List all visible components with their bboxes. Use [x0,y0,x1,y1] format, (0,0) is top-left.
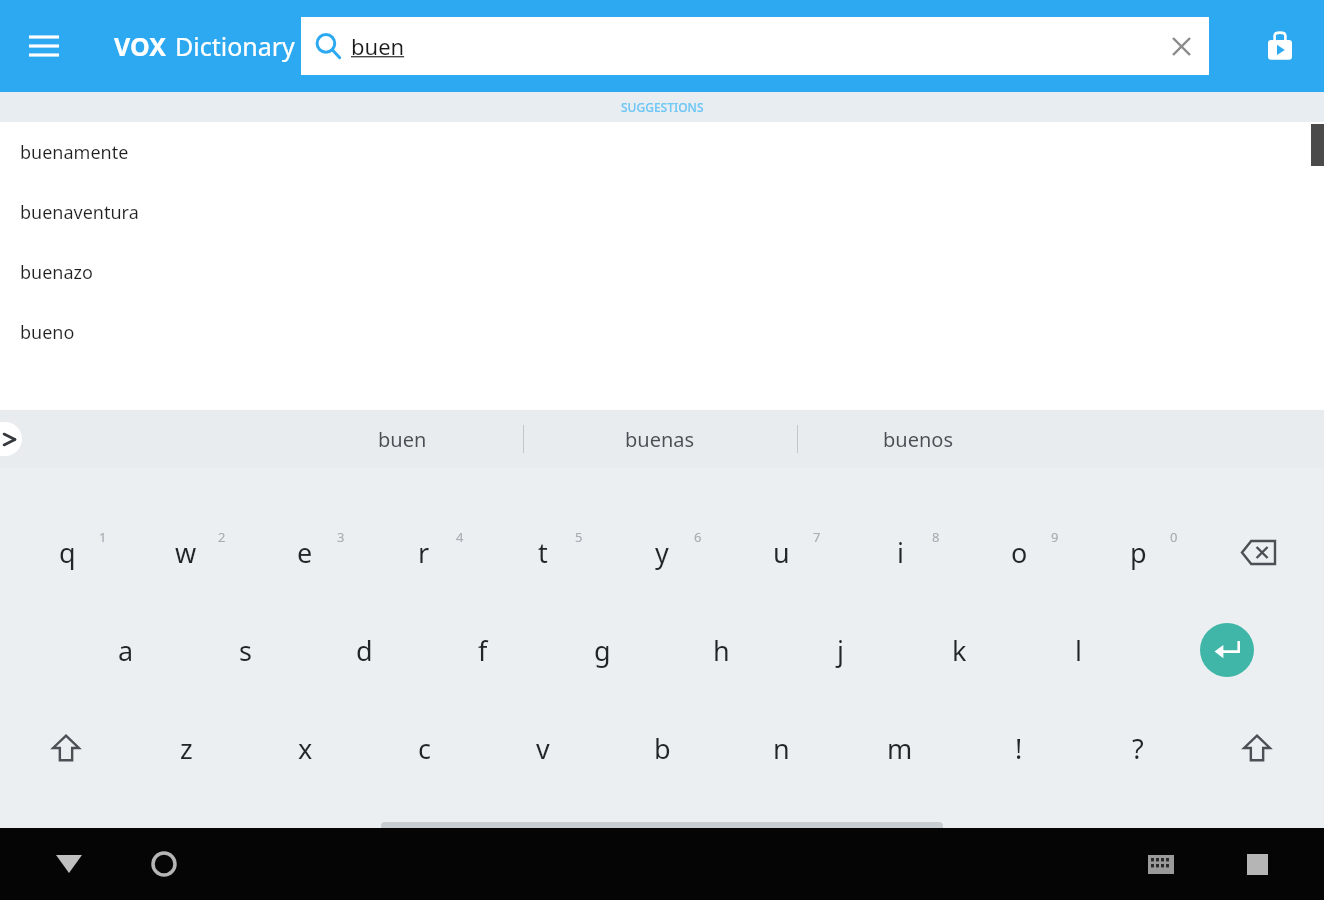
button[interactable]: x [251,704,359,792]
staticText: buen [351,31,405,61]
button[interactable]: Google Play [1252,18,1308,74]
button[interactable]: Backspace [1204,508,1312,596]
button[interactable]: j [786,606,894,694]
staticText: p [1130,534,1147,571]
button[interactable]: g [548,606,656,694]
staticText: 9 [1051,528,1059,546]
button[interactable]: Expand [0,422,22,456]
button[interactable]: ?123 [6,802,126,890]
staticText: VOX [114,29,167,63]
button[interactable]: buenamente [0,122,1324,182]
staticText: x [298,730,313,767]
button[interactable]: t [489,508,597,596]
button[interactable]: , [132,802,240,890]
button[interactable]: a [72,606,180,694]
button[interactable]: u [727,508,835,596]
staticText: SUGGESTIONS [621,99,704,115]
button[interactable]: h [667,606,775,694]
staticText: q [59,534,76,571]
staticText: y [655,534,669,571]
button[interactable]: Switch keyboard [1132,835,1190,893]
staticText: 4 [456,528,464,546]
button[interactable]: m [846,704,954,792]
button[interactable]: b [608,704,716,792]
button[interactable]: n [727,704,835,792]
staticText: 5 [575,528,583,546]
button[interactable]: Shift [12,704,120,792]
staticText: f [478,632,488,669]
staticText: 3 [337,528,345,546]
staticText: i [897,534,904,571]
button[interactable]: f [429,606,537,694]
button[interactable]: w [132,508,240,596]
button[interactable]: . [1084,802,1192,890]
button[interactable]: ? [1084,704,1192,792]
button[interactable]: buenaventura [0,182,1324,242]
button[interactable]: o [965,508,1073,596]
button[interactable]: Enter [1173,606,1281,694]
staticText: buenamente [20,140,129,165]
staticText: buenos [883,426,953,453]
button[interactable]: l [1024,606,1132,694]
staticText: k [952,632,967,669]
button[interactable]: Emoji [965,802,1073,890]
button[interactable]: i [846,508,954,596]
staticText: buenas [625,426,695,453]
button[interactable]: Clear [1161,26,1201,66]
button[interactable]: Home [135,835,193,893]
staticText: t [538,534,548,571]
button[interactable]: Change language [251,802,359,890]
staticText: ? [1132,730,1144,767]
button[interactable]: bueno [0,302,1324,362]
staticText: j [837,632,844,669]
staticText: 0 [1170,528,1178,546]
staticText: buen [378,426,427,453]
button[interactable]: d [310,606,418,694]
staticText: b [654,730,671,767]
button[interactable]: Hide keyboard [40,835,98,893]
staticText: r [418,534,430,571]
staticText: bueno [20,320,75,345]
staticText: m [887,730,913,767]
button[interactable]: e [251,508,359,596]
staticText: h [713,632,730,669]
staticText: o [1011,534,1028,571]
button[interactable]: buen [301,17,1209,75]
staticText: g [594,632,611,669]
staticText: buenaventura [20,200,139,225]
button[interactable]: y [608,508,716,596]
button[interactable]: k [905,606,1013,694]
button[interactable]: ?123 [1197,802,1317,890]
staticText: z [180,730,193,767]
button[interactable]: Menu [16,18,72,74]
staticText: 1 [99,528,107,546]
button[interactable]: c [370,704,478,792]
staticText: ?123 [42,831,90,861]
button[interactable]: p [1084,508,1192,596]
button[interactable]: buenas [550,410,770,468]
staticText: Dictionary [175,29,295,63]
staticText: e [297,534,313,571]
button[interactable]: q [13,508,121,596]
button[interactable]: r [370,508,478,596]
button[interactable]: buenos [808,410,1028,468]
button[interactable]: buenazo [0,242,1324,302]
button[interactable]: TR · EN · ES [381,822,943,870]
staticText: buenazo [20,260,93,285]
staticText: 7 [813,528,821,546]
button[interactable]: v [489,704,597,792]
staticText: ?123 [1233,831,1281,861]
button[interactable]: buen [292,410,512,468]
staticText: 6 [694,528,702,546]
staticText: c [418,730,431,767]
button[interactable]: s [191,606,299,694]
button[interactable]: z [132,704,240,792]
staticText: 8 [932,528,940,546]
button[interactable]: Shift [1203,704,1311,792]
button[interactable]: ! [965,704,1073,792]
staticText: 2 [218,528,226,546]
button[interactable]: Recents [1228,835,1286,893]
